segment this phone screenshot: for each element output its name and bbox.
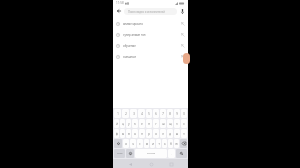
staticText: ц: [122, 122, 124, 126]
button[interactable]: г: [153, 119, 159, 128]
button[interactable]: Поиск видео и исполнителей: [124, 8, 177, 15]
button[interactable]: обучение: [113, 40, 188, 51]
staticText: э: [183, 132, 185, 136]
button[interactable]: Emoji: [126, 149, 134, 158]
button[interactable]: ц: [120, 119, 125, 128]
button[interactable]: 4: [138, 109, 145, 118]
button[interactable]: д: [167, 129, 173, 138]
staticText: 11:58: [116, 1, 124, 5]
button[interactable]: б: [168, 139, 173, 148]
button[interactable]: я: [123, 139, 129, 148]
button[interactable]: к: [132, 119, 138, 128]
button[interactable]: р: [146, 129, 152, 138]
button[interactable]: ю: [174, 139, 179, 148]
staticText: й: [116, 122, 118, 126]
staticText: ы: [122, 132, 124, 136]
staticText: л: [162, 132, 164, 136]
button[interactable]: з: [174, 119, 180, 128]
staticText: в: [128, 132, 130, 136]
button[interactable]: 5: [146, 109, 152, 118]
button[interactable]: 8: [167, 109, 173, 118]
staticText: п: [141, 132, 143, 136]
staticText: ш: [162, 122, 165, 126]
staticText: ь: [164, 142, 166, 146]
staticText: .: [171, 152, 172, 155]
button[interactable]: супер аниме топ: [113, 29, 188, 40]
staticText: 0: [183, 112, 185, 116]
staticText: р: [148, 132, 150, 136]
button[interactable]: ы: [120, 129, 125, 138]
button[interactable]: смешные: [113, 51, 188, 62]
button[interactable]: 2: [122, 109, 129, 118]
staticText: супер аниме топ: [123, 33, 181, 37]
staticText: обучение: [123, 44, 181, 48]
button[interactable]: о: [153, 129, 159, 138]
button[interactable]: л: [160, 129, 166, 138]
button[interactable]: Recents: [167, 160, 175, 168]
staticText: с: [139, 142, 141, 146]
button[interactable]: э: [181, 129, 187, 138]
staticText: д: [169, 132, 171, 136]
button[interactable]: с: [137, 139, 143, 148]
button[interactable]: ш: [160, 119, 166, 128]
staticText: Русский: [147, 152, 156, 155]
staticText: смешные: [123, 55, 181, 59]
button[interactable]: Back: [115, 7, 123, 15]
button[interactable]: Back: [126, 160, 134, 168]
staticText: 5: [148, 112, 150, 116]
button[interactable]: Search: [176, 149, 187, 158]
button[interactable]: аниме мрачно: [113, 18, 188, 29]
staticText: ЧИСЛ: [117, 152, 123, 155]
staticText: з: [176, 122, 178, 126]
staticText: 8: [169, 112, 171, 116]
button[interactable]: Voice search: [178, 7, 186, 15]
button[interactable]: т: [156, 139, 161, 148]
staticText: н: [148, 122, 150, 126]
button[interactable]: щ: [167, 119, 173, 128]
staticText: 3: [133, 112, 135, 116]
button[interactable]: ЧИСЛ: [114, 149, 125, 158]
button[interactable]: 1: [114, 109, 121, 118]
staticText: х: [183, 122, 185, 126]
staticText: я: [125, 142, 127, 146]
button[interactable]: Home: [147, 160, 155, 168]
staticText: ф: [116, 132, 118, 136]
staticText: 7: [162, 112, 164, 116]
button[interactable]: у: [126, 119, 131, 128]
button[interactable]: Backspace: [180, 139, 187, 148]
staticText: б: [170, 142, 172, 146]
staticText: у: [128, 122, 130, 126]
button[interactable]: 7: [160, 109, 166, 118]
staticText: а: [134, 132, 136, 136]
staticText: ч: [132, 142, 134, 146]
staticText: ю: [175, 142, 178, 146]
button[interactable]: ь: [162, 139, 167, 148]
button[interactable]: м: [144, 139, 149, 148]
button[interactable]: Shift: [114, 139, 122, 148]
staticText: 9: [176, 112, 178, 116]
button[interactable]: ж: [174, 129, 180, 138]
staticText: и: [152, 142, 154, 146]
staticText: е: [141, 122, 143, 126]
button[interactable]: а: [132, 129, 138, 138]
button[interactable]: ч: [130, 139, 136, 148]
button[interactable]: 6: [153, 109, 159, 118]
button[interactable]: е: [139, 119, 145, 128]
staticText: м: [146, 142, 148, 146]
button[interactable]: 9: [174, 109, 180, 118]
button[interactable]: в: [126, 129, 131, 138]
button[interactable]: 3: [130, 109, 137, 118]
staticText: щ: [169, 122, 172, 126]
staticText: к: [134, 122, 136, 126]
button[interactable]: Русский: [135, 149, 167, 158]
button[interactable]: н: [146, 119, 152, 128]
button[interactable]: х: [181, 119, 187, 128]
button[interactable]: п: [139, 129, 145, 138]
button[interactable]: й: [114, 119, 119, 128]
button[interactable]: ф: [114, 129, 119, 138]
staticText: о: [155, 132, 157, 136]
staticText: аниме мрачно: [123, 22, 181, 26]
button[interactable]: и: [150, 139, 155, 148]
button[interactable]: 0: [181, 109, 187, 118]
